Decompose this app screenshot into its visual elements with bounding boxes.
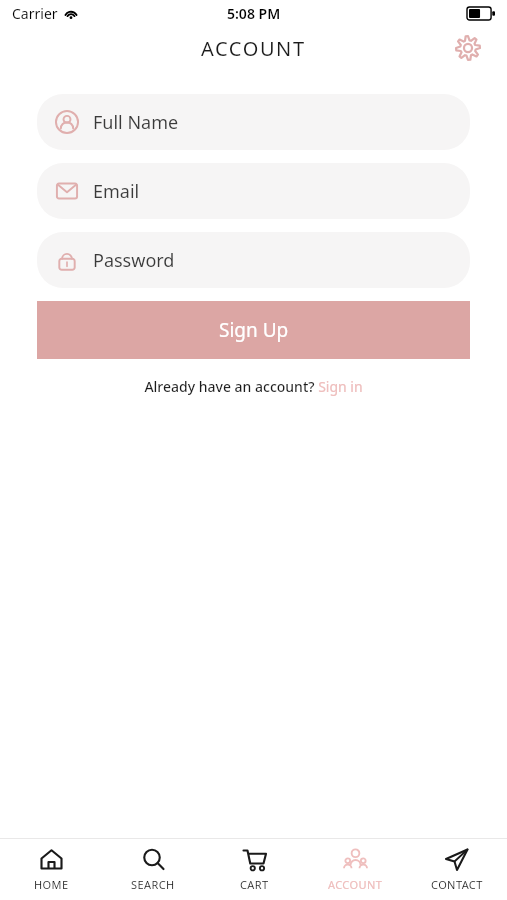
button[interactable]: Already have an account? Sign in [0,377,507,396]
staticText: 5:08 PM [227,4,281,23]
button[interactable]: CONTACT [406,839,507,900]
staticText: HOME [34,877,69,892]
staticText: Carrier [12,4,58,23]
staticText: ACCOUNT [201,35,306,62]
button[interactable]: Sign Up [37,301,470,359]
staticText: Full Name [93,110,179,135]
staticText: CONTACT [431,877,483,892]
staticText: SEARCH [131,877,175,892]
button[interactable]: CART [204,839,305,900]
button[interactable]: Settings [451,31,485,65]
staticText: CART [240,877,269,892]
staticText: Password [93,248,175,273]
staticText: Already have an account? Sign in [144,377,363,396]
staticText: Email [93,179,140,204]
button[interactable]: ACCOUNT [305,839,406,900]
button[interactable]: Full Name [37,94,470,150]
button[interactable]: Email [37,163,470,219]
button[interactable]: Password [37,232,470,288]
button[interactable]: HOME [0,839,102,900]
button[interactable]: SEARCH [102,839,204,900]
staticText: ACCOUNT [328,877,383,892]
staticText: Sign Up [219,317,289,343]
